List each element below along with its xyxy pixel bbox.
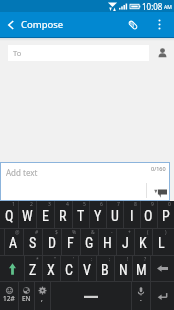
button[interactable]: Q <box>0 201 18 228</box>
staticText: Q <box>5 208 14 224</box>
staticText: . <box>140 294 142 303</box>
button[interactable]: Add text <box>0 162 170 201</box>
staticText: 0/160 <box>151 165 166 172</box>
staticText: P <box>162 208 170 224</box>
staticText: * <box>36 256 39 263</box>
staticText: C <box>65 262 73 278</box>
staticText: & <box>91 229 95 236</box>
button[interactable]: Shift <box>0 256 24 281</box>
staticText: AM <box>164 4 172 11</box>
staticText: ? <box>144 256 147 263</box>
staticText: 7 <box>117 201 120 208</box>
button[interactable]: Change language <box>18 282 34 310</box>
button[interactable]: D <box>42 229 61 255</box>
staticText: B <box>101 262 109 278</box>
staticText: , <box>41 294 43 303</box>
staticText: E <box>42 208 49 224</box>
staticText: 10:08 <box>142 1 163 12</box>
staticText: $ <box>55 229 58 236</box>
button[interactable]: M <box>132 256 150 281</box>
button[interactable]: Enter <box>150 282 174 310</box>
staticText: % <box>72 229 77 236</box>
staticText: - <box>111 229 113 236</box>
staticText: # <box>35 229 39 236</box>
staticText: J <box>122 235 129 251</box>
button[interactable]: T <box>72 201 89 228</box>
staticText: ) <box>165 229 167 236</box>
button[interactable]: Space <box>50 282 131 310</box>
staticText: ' <box>73 256 75 263</box>
button[interactable]: Back <box>0 12 22 37</box>
button[interactable]: G <box>80 229 98 255</box>
staticText: F <box>67 235 74 251</box>
staticText: 12# <box>3 294 15 303</box>
button[interactable]: S <box>23 229 42 255</box>
staticText: 2 <box>30 201 33 208</box>
staticText: Compose <box>21 18 64 31</box>
button[interactable]: N <box>114 256 132 281</box>
button[interactable]: A <box>4 229 23 255</box>
staticText: S <box>29 235 37 251</box>
button[interactable]: V <box>78 256 96 281</box>
staticText: D <box>48 235 56 251</box>
staticText: " <box>54 256 57 263</box>
staticText: L <box>158 235 165 251</box>
staticText: H <box>103 235 112 251</box>
staticText: G <box>85 235 94 251</box>
staticText: 8 <box>134 201 137 208</box>
button[interactable]: J <box>116 229 134 255</box>
button[interactable]: X <box>42 256 60 281</box>
staticText: : <box>91 256 93 263</box>
staticText: K <box>139 235 147 251</box>
staticText: I <box>130 208 134 224</box>
button[interactable]: B <box>96 256 114 281</box>
button[interactable]: Backspace <box>150 256 174 281</box>
staticText: ! <box>127 256 129 263</box>
button[interactable]: Voice input <box>131 282 150 310</box>
button[interactable]: R <box>54 201 72 228</box>
button[interactable]: O <box>140 201 157 228</box>
button[interactable]: F <box>61 229 80 255</box>
button[interactable]: Y <box>89 201 106 228</box>
staticText: V <box>83 262 91 278</box>
button[interactable]: Send message <box>150 184 170 201</box>
staticText: A <box>9 235 18 251</box>
staticText: M <box>136 262 147 278</box>
staticText: W <box>22 208 33 224</box>
button[interactable]: C <box>60 256 78 281</box>
button[interactable]: Symbols <box>0 282 18 310</box>
button[interactable]: Choose contact <box>150 41 174 65</box>
staticText: 9 <box>151 201 154 208</box>
button[interactable]: L <box>152 229 170 255</box>
button[interactable]: H <box>98 229 116 255</box>
button[interactable]: U <box>106 201 123 228</box>
button[interactable]: P <box>157 201 174 228</box>
button[interactable]: I <box>123 201 140 228</box>
button[interactable]: Z <box>24 256 42 281</box>
staticText: ( <box>147 229 149 236</box>
staticText: 1 <box>12 201 15 208</box>
staticText: R <box>59 208 67 224</box>
staticText: ; <box>109 256 111 263</box>
staticText: 6 <box>100 201 103 208</box>
button[interactable]: K <box>134 229 152 255</box>
button[interactable]: E <box>36 201 54 228</box>
staticText: T <box>77 208 85 224</box>
staticText: 3 <box>48 201 51 208</box>
button[interactable]: W <box>18 201 36 228</box>
staticText: 4 <box>66 201 69 208</box>
staticText: O <box>144 208 153 224</box>
button[interactable]: To <box>8 45 149 61</box>
staticText: U <box>111 208 119 224</box>
staticText: EN <box>22 294 31 303</box>
staticText: Add text <box>6 167 38 178</box>
button[interactable]: Attach file <box>121 12 145 37</box>
staticText: X <box>47 262 55 278</box>
staticText: To <box>13 48 22 58</box>
staticText: Y <box>94 208 102 224</box>
button[interactable]: More options <box>145 12 174 37</box>
button[interactable]: Settings <box>34 282 50 310</box>
staticText: Z <box>29 262 37 278</box>
staticText: N <box>119 262 128 278</box>
staticText: + <box>128 229 131 236</box>
